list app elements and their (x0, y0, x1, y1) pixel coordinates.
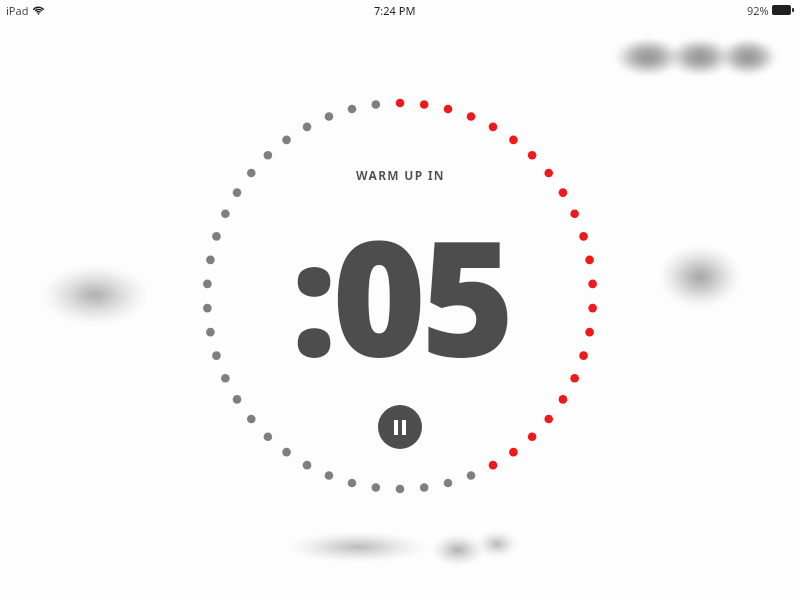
staticText: 7:24 PM (374, 3, 416, 18)
staticText: WARM UP IN (356, 167, 445, 183)
staticText: :05 (291, 185, 510, 403)
button[interactable]: Pause timer (378, 405, 422, 449)
staticText: 92% (747, 3, 769, 18)
staticText: iPad (6, 3, 29, 18)
